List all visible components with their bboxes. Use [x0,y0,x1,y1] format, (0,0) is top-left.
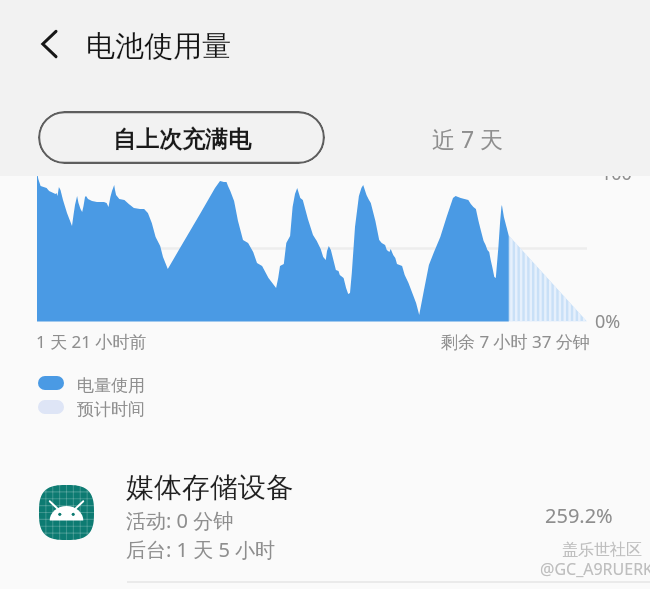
staticText: 预计时间 [77,399,145,420]
staticText: 100 [601,161,632,186]
button[interactable]: 媒体存储设备 [0,462,650,582]
staticText: 1 天 21 小时前 [36,330,147,353]
staticText: 259.2% [545,502,613,529]
staticText: @GC_A9RUERK [540,558,650,580]
staticText: 剩余 7 小时 37 分钟 [441,330,590,353]
staticText: 电池使用量 [86,28,231,65]
staticText: 媒体存储设备 [126,470,294,505]
staticText: 电量使用 [77,375,145,396]
staticText: 后台: 1 天 5 小时 [126,536,276,563]
staticText: 自上次充满电 [113,125,251,154]
staticText: 近 7 天 [432,123,504,154]
staticText: 盖乐世社区 [562,540,642,560]
button[interactable]: Back [24,18,76,70]
button[interactable]: 近 7 天 [420,111,516,164]
staticText: 0% [595,309,621,334]
staticText: 活动: 0 分钟 [126,507,234,534]
button[interactable]: 自上次充满电 [38,111,325,164]
